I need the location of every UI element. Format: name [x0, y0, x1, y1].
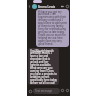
staticText: Hi have you got my purchase. I am experi…: [38, 10, 67, 46]
button[interactable]: Attach: [60, 88, 65, 93]
button[interactable]: Text message: [33, 88, 60, 94]
staticText: Text message: [35, 89, 53, 93]
button[interactable]: Send: [65, 88, 70, 93]
button[interactable]: Video call: [60, 4, 65, 9]
button[interactable]: Emma Lewis: [38, 5, 60, 9]
button[interactable]: Hey! My eighteenth are BACK match. I hav…: [28, 48, 59, 85]
button[interactable]: [32, 4, 37, 9]
button[interactable]: Call: [65, 4, 70, 9]
button[interactable]: Emoji: [27, 88, 33, 94]
button[interactable]: Hi have you got my purchase. I am experi…: [36, 9, 69, 47]
button[interactable]: Back: [27, 4, 32, 9]
staticText: Hey! My eighteenth are BACK match. I hav…: [30, 49, 57, 84]
